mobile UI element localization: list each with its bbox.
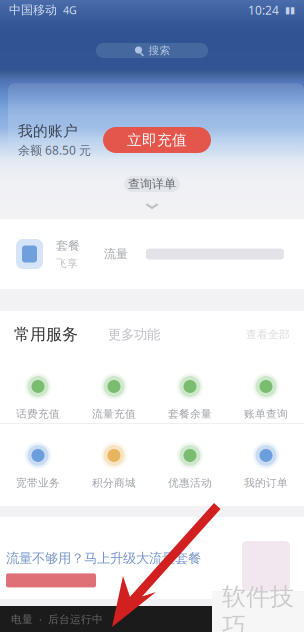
staticText: 查询详单 bbox=[128, 177, 176, 191]
staticText: 搜索 bbox=[148, 44, 170, 57]
staticText: 10:24 bbox=[248, 2, 279, 18]
staticText: 更多功能 bbox=[108, 326, 160, 343]
staticText: 电量 · 后台运行中 bbox=[11, 612, 103, 626]
staticText: 流量 bbox=[104, 247, 128, 261]
staticText: 优惠活动 bbox=[168, 476, 212, 489]
staticText: 流量充值 bbox=[92, 407, 136, 420]
staticText: 话费充值 bbox=[16, 407, 60, 420]
button[interactable]: 优惠活动 bbox=[152, 440, 228, 492]
button[interactable]: 立即充值 bbox=[103, 127, 211, 153]
button[interactable]: 流量充值 bbox=[76, 371, 152, 423]
button[interactable]: 查看全部 bbox=[246, 328, 290, 341]
staticText: 余额 68.50 元 bbox=[18, 142, 91, 158]
button[interactable]: 账单查询 bbox=[228, 371, 304, 423]
staticText: 软件技巧 bbox=[222, 582, 294, 632]
staticText: 套餐余量 bbox=[168, 407, 212, 420]
staticText: 套餐 bbox=[56, 238, 80, 253]
staticText: 积分商城 bbox=[92, 476, 136, 489]
staticText: 飞享 bbox=[56, 257, 78, 270]
staticText: 宽带业务 bbox=[16, 476, 60, 489]
staticText: 我的账户 bbox=[18, 122, 78, 140]
button[interactable]: 流量不够用？马上升级大流量套餐 bbox=[0, 517, 304, 599]
button[interactable]: 宽带业务 bbox=[0, 440, 76, 492]
staticText: 我的订单 bbox=[244, 476, 288, 489]
staticText: 4G bbox=[57, 3, 77, 17]
staticText: 账单查询 bbox=[244, 407, 288, 420]
staticText: ▮▮ bbox=[279, 5, 295, 15]
button[interactable]: 我的订单 bbox=[228, 440, 304, 492]
button[interactable]: 积分商城 bbox=[76, 440, 152, 492]
button[interactable]: 套餐余量 bbox=[152, 371, 228, 423]
button[interactable]: 话费充值 bbox=[0, 371, 76, 423]
button[interactable]: 展开 bbox=[137, 201, 167, 213]
staticText: 中国移动 bbox=[9, 3, 57, 17]
staticText: 常用服务 bbox=[14, 325, 78, 344]
button[interactable]: 搜索 bbox=[96, 43, 208, 58]
staticText: 立即充值 bbox=[127, 131, 187, 149]
staticText: 流量不够用？马上升级大流量套餐 bbox=[6, 550, 201, 566]
button[interactable]: 套餐 bbox=[0, 219, 304, 289]
button[interactable]: 查询详单 bbox=[124, 176, 180, 192]
staticText: 查看全部 bbox=[246, 328, 290, 341]
